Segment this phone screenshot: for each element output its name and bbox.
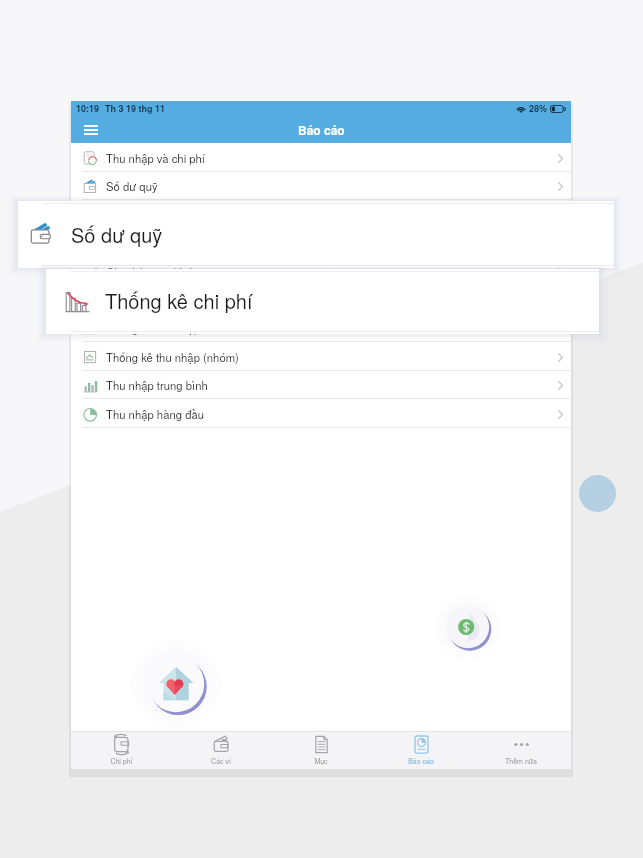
staticText: Chi phí: [110, 756, 133, 766]
button[interactable]: [46, 269, 599, 334]
button[interactable]: Menu: [80, 119, 102, 141]
staticText: Báo cáo: [408, 756, 434, 766]
staticText: Chi phí hàng đầu: [106, 292, 193, 308]
staticText: Thu nhập trung bình: [106, 377, 208, 393]
button[interactable]: Chi phí: [71, 732, 171, 769]
button[interactable]: Thu nhập hàng đầu: [71, 400, 571, 428]
staticText: Các ví: [211, 756, 231, 766]
button[interactable]: Thống kê chi phí: [71, 201, 571, 229]
staticText: Thống kê thu nhập: [106, 320, 200, 336]
staticText: Thống kê chi phí: [105, 286, 253, 315]
staticText: Thống kê thu nhập (nhóm): [106, 349, 239, 365]
staticText: Báo cáo: [298, 121, 345, 138]
staticText: Thống kê chi phí (nhóm): [106, 235, 229, 251]
button[interactable]: Thu nhập trung bình: [71, 371, 571, 399]
button[interactable]: Báo cáo: [371, 732, 471, 769]
button[interactable]: Thống kê chi phí (nhóm): [71, 229, 571, 257]
button[interactable]: Số dư quỹ: [71, 172, 571, 200]
button[interactable]: Mục: [271, 732, 371, 769]
staticText: Chi phí trung bình: [106, 264, 196, 280]
button[interactable]: Chi phí hàng đầu: [71, 286, 571, 314]
staticText: Thu nhập hàng đầu: [106, 406, 204, 422]
staticText: Số dư quỹ: [106, 178, 158, 194]
staticText: Mục: [314, 756, 328, 766]
button[interactable]: Thống kê thu nhập (nhóm): [71, 343, 571, 371]
staticText: Thêm nữa: [505, 756, 537, 766]
staticText: Số dư quỹ: [71, 220, 163, 249]
staticText: 10:19: [76, 102, 100, 115]
button[interactable]: Thống kê thu nhập: [71, 314, 571, 342]
staticText: 28%: [529, 102, 548, 115]
staticText: Th 3 19 thg 11: [105, 102, 166, 115]
button[interactable]: Thêm nữa: [471, 732, 571, 769]
staticText: Thu nhập và chi phí: [106, 150, 205, 166]
button[interactable]: Các ví: [171, 732, 271, 769]
button[interactable]: Thu nhập và chi phí: [71, 144, 571, 172]
button[interactable]: [18, 201, 614, 268]
button[interactable]: Chi phí trung bình: [71, 258, 571, 286]
